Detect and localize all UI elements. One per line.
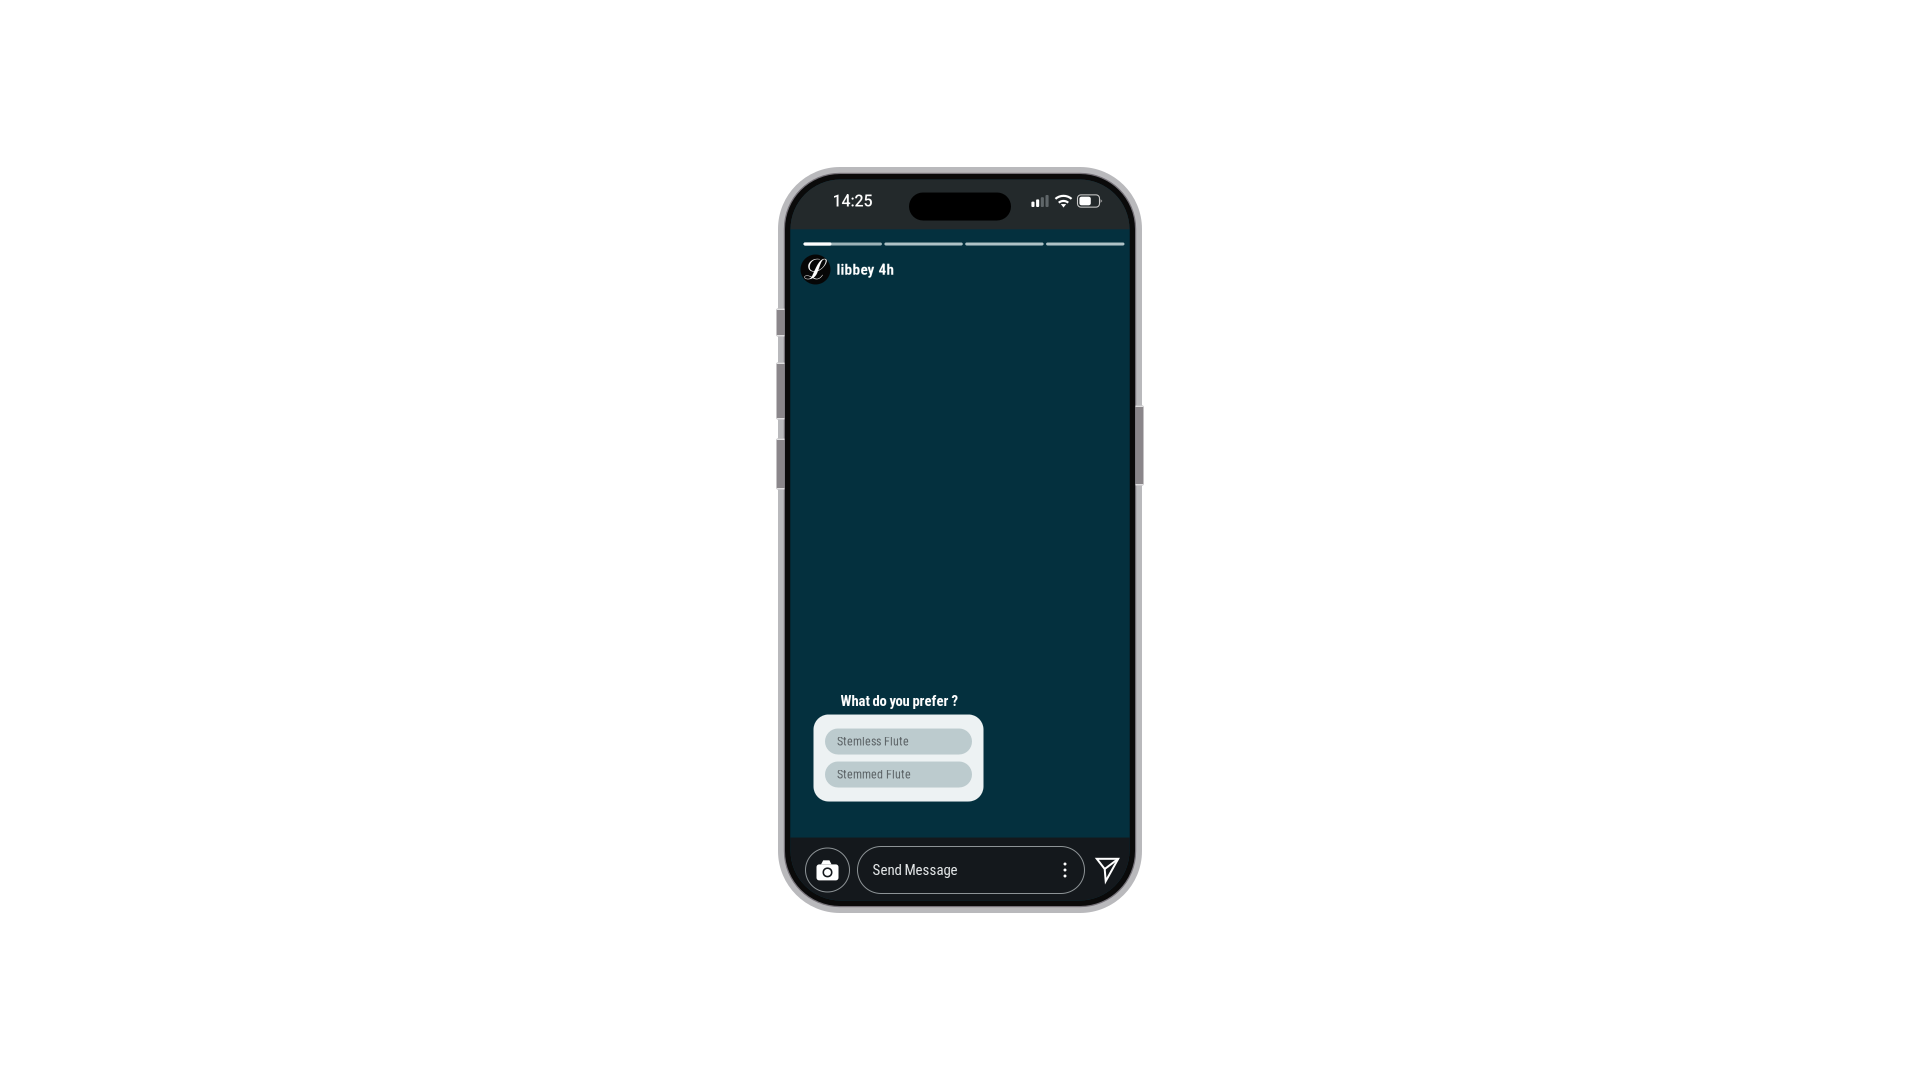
- staticText: libbey 4h: [836, 260, 894, 278]
- staticText: ℒ: [804, 249, 827, 287]
- staticText: What do you prefer ?: [840, 692, 958, 709]
- button[interactable]: Camera: [805, 848, 849, 892]
- staticText: 14:25: [832, 192, 872, 210]
- button[interactable]: Stemless Flute: [825, 728, 972, 754]
- button[interactable]: Stemmed Flute: [825, 761, 972, 787]
- button[interactable]: Share: [1090, 846, 1124, 893]
- staticText: Stemless Flute: [837, 734, 909, 749]
- staticText: Stemmed Flute: [837, 767, 911, 782]
- staticText: Send Message: [872, 861, 957, 879]
- button[interactable]: Send Message: [857, 846, 1084, 893]
